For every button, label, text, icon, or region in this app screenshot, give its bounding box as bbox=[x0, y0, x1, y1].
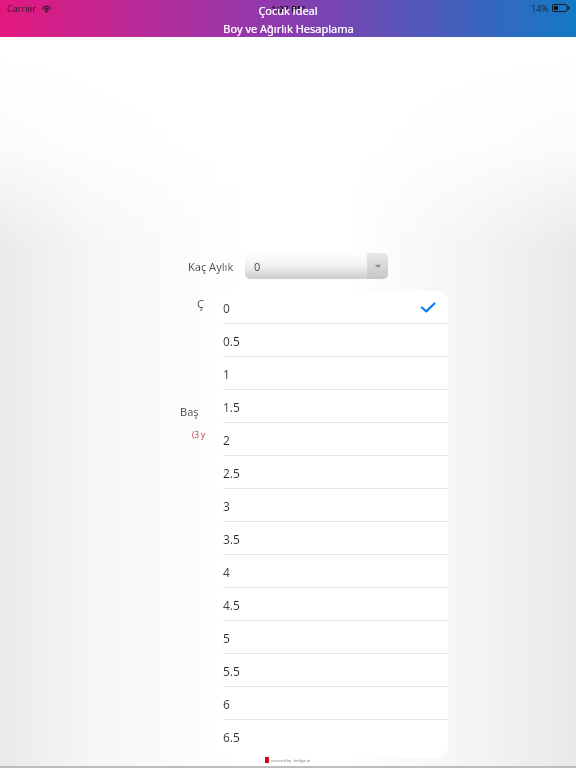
staticText: 5.5 bbox=[223, 663, 240, 679]
staticText: Çocuk ideal bbox=[258, 3, 318, 18]
staticText: 3 bbox=[223, 498, 230, 514]
staticText: Kaç Aylık bbox=[188, 259, 234, 274]
staticText: 4.5 bbox=[223, 597, 240, 613]
staticText: 3.5 bbox=[223, 531, 240, 547]
staticText: 2.5 bbox=[223, 465, 240, 481]
staticText: secured by bridge.io bbox=[271, 758, 311, 763]
button[interactable]: 3.5 bbox=[209, 522, 448, 555]
button[interactable]: 5.5 bbox=[209, 654, 448, 687]
button[interactable]: 1 bbox=[209, 357, 448, 390]
staticText: Carrier bbox=[7, 2, 37, 14]
staticText: Baş bbox=[180, 404, 199, 419]
staticText: 6 bbox=[223, 696, 230, 712]
button[interactable]: 2.5 bbox=[209, 456, 448, 489]
other: Wi-Fi signal bbox=[41, 3, 52, 14]
button[interactable]: 2 bbox=[209, 423, 448, 456]
staticText: 0.5 bbox=[223, 333, 240, 349]
button[interactable]: 0.5 bbox=[209, 324, 448, 357]
staticText: 1:23 PM bbox=[271, 2, 306, 14]
staticText: 0 bbox=[223, 300, 230, 316]
button[interactable]: 0 bbox=[209, 291, 448, 324]
staticText: 1.5 bbox=[223, 399, 240, 415]
button[interactable]: 4 bbox=[209, 555, 448, 588]
button[interactable]: 6 bbox=[209, 687, 448, 720]
button[interactable]: 3 bbox=[209, 489, 448, 522]
other: Selected bbox=[421, 302, 435, 313]
button[interactable]: 4.5 bbox=[209, 588, 448, 621]
staticText: 6.5 bbox=[223, 729, 240, 745]
staticText: 14% bbox=[531, 2, 549, 14]
staticText: 4 bbox=[223, 564, 230, 580]
button[interactable]: 1.5 bbox=[209, 390, 448, 423]
staticText: Ç bbox=[197, 296, 204, 311]
staticText: 0 bbox=[254, 259, 261, 274]
staticText: 2 bbox=[223, 432, 230, 448]
staticText: Boy ve Ağırlık Hesaplama bbox=[223, 21, 354, 36]
other: Battery 14 percent bbox=[552, 4, 569, 12]
button[interactable]: 0 bbox=[245, 253, 388, 279]
button[interactable]: 6.5 bbox=[209, 720, 448, 753]
button[interactable]: 5 bbox=[209, 621, 448, 654]
staticText: 1 bbox=[223, 366, 230, 382]
staticText: (3 y bbox=[192, 429, 206, 440]
staticText: 5 bbox=[223, 630, 230, 646]
